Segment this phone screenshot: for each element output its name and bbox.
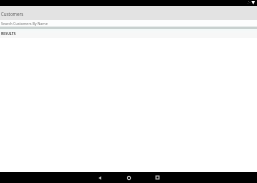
button[interactable]: Home xyxy=(114,172,143,183)
button[interactable]: Customers xyxy=(0,6,257,20)
button[interactable]: Recents xyxy=(143,172,172,183)
staticText: Customers xyxy=(1,11,24,17)
staticText: RESULTS xyxy=(1,31,16,36)
button[interactable]: Search Customers By Name xyxy=(0,20,257,26)
button[interactable]: Back xyxy=(85,172,114,183)
staticText: Search Customers By Name xyxy=(1,21,48,26)
